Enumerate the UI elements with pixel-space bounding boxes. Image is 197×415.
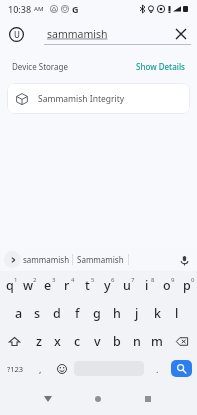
button[interactable]: Voice input [174, 250, 194, 270]
staticText: sammamish [47, 27, 108, 41]
staticText: d [53, 305, 61, 322]
staticText: h [113, 305, 121, 322]
staticText: n [133, 333, 141, 350]
staticText: b [113, 333, 121, 350]
button[interactable]: sammamish [21, 248, 72, 271]
staticText: Device Storage [12, 61, 68, 72]
button[interactable]: Backspace [167, 327, 197, 355]
staticText: i [145, 277, 149, 294]
staticText: ?123 [7, 364, 24, 374]
button[interactable]: x [48, 327, 67, 355]
button[interactable]: j [127, 299, 147, 327]
staticText: y [104, 277, 111, 294]
staticText: 6 [111, 276, 115, 284]
button[interactable]: Home [73, 382, 123, 415]
staticText: sammamish [23, 254, 70, 265]
button[interactable]: p [177, 271, 197, 299]
staticText: f [75, 305, 80, 322]
staticText: m [151, 333, 163, 350]
staticText: 4 [71, 276, 75, 284]
button[interactable]: a [9, 299, 28, 327]
staticText: 9 [171, 276, 175, 284]
staticText: Sammamish [77, 254, 124, 265]
staticText: j [135, 305, 139, 322]
staticText: 7 [131, 276, 135, 284]
button[interactable]: Expand suggestions [4, 251, 21, 268]
button[interactable]: Search [171, 360, 192, 377]
button[interactable]: b [107, 327, 127, 355]
button[interactable]: c [67, 327, 87, 355]
staticText: c [74, 333, 81, 350]
staticText: l [175, 305, 179, 322]
staticText: 0 [191, 276, 195, 284]
staticText: AM [34, 5, 44, 13]
staticText: g [93, 305, 101, 322]
button[interactable]: q [0, 271, 19, 299]
button[interactable]: i [137, 271, 157, 299]
staticText: 8 [151, 276, 155, 284]
button[interactable]: y [97, 271, 117, 299]
staticText: Sammamish Integrity [38, 93, 125, 105]
staticText: p [183, 277, 191, 294]
button[interactable]: . [144, 355, 171, 382]
staticText: G [72, 3, 79, 15]
staticText: 10:38 [8, 3, 32, 15]
button[interactable]: g [87, 299, 107, 327]
button[interactable]: l [167, 299, 187, 327]
button[interactable]: Recents [123, 382, 173, 415]
button[interactable]: Account [9, 27, 24, 42]
staticText: s [34, 305, 41, 322]
button[interactable]: m [147, 327, 167, 355]
button[interactable]: o [157, 271, 177, 299]
staticText: w [23, 277, 34, 294]
button[interactable]: u [117, 271, 137, 299]
button[interactable]: r [57, 271, 77, 299]
staticText: U [14, 29, 20, 40]
staticText: q [6, 277, 14, 294]
button[interactable]: Sammamish Integrity [7, 83, 190, 114]
staticText: 1 [14, 276, 18, 284]
staticText: r [64, 277, 70, 294]
staticText: 2 [33, 276, 37, 284]
staticText: x [54, 333, 61, 350]
button[interactable]: Hide keyboard [23, 382, 73, 415]
staticText: o [163, 277, 171, 294]
staticText: 3 [52, 276, 56, 284]
button[interactable]: f [67, 299, 87, 327]
staticText: , [39, 363, 42, 375]
button[interactable]: e [38, 271, 57, 299]
button[interactable]: h [107, 299, 127, 327]
button[interactable]: n [127, 327, 147, 355]
button[interactable]: k [147, 299, 167, 327]
button[interactable]: s [28, 299, 47, 327]
button[interactable]: Shift [0, 327, 29, 355]
staticText: k [154, 305, 161, 322]
button[interactable]: Emoji [50, 355, 74, 382]
staticText: a [15, 305, 23, 322]
staticText: . [156, 363, 159, 375]
staticText: v [94, 333, 101, 350]
staticText: Show Details [136, 61, 185, 72]
button[interactable]: , [30, 355, 50, 382]
button[interactable]: t [77, 271, 97, 299]
staticText: 5 [91, 276, 95, 284]
button[interactable]: ?123 [0, 355, 30, 382]
button[interactable]: Clear [171, 24, 191, 44]
button[interactable]: Show Details [136, 61, 185, 72]
button[interactable]: Sammamish [73, 248, 128, 271]
staticText: u [123, 277, 131, 294]
button[interactable]: v [87, 327, 107, 355]
staticText: t [85, 277, 90, 294]
staticText: z [36, 333, 42, 350]
staticText: e [44, 277, 52, 294]
button[interactable]: z [29, 327, 48, 355]
button[interactable]: w [19, 271, 38, 299]
button[interactable]: d [47, 299, 67, 327]
